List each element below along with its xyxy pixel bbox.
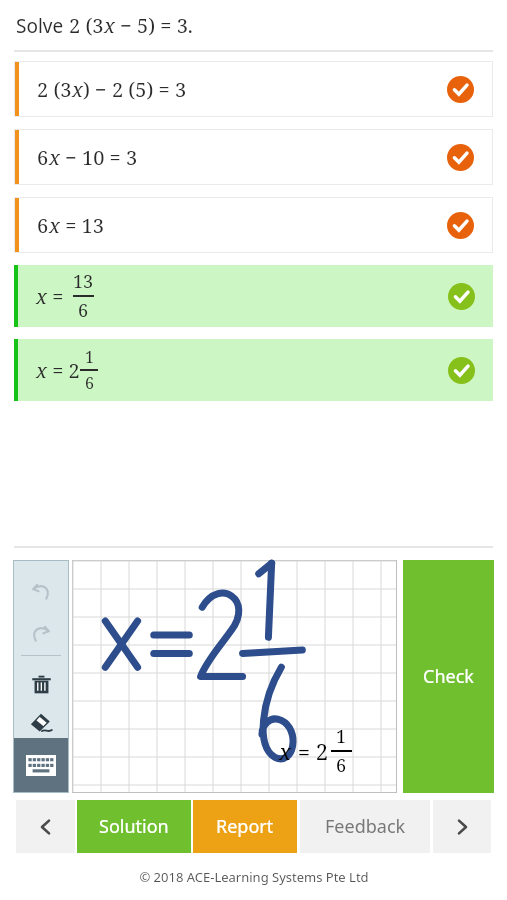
staticText: 6	[336, 753, 347, 778]
staticText: Solve	[16, 13, 69, 39]
button[interactable]: Feedback	[300, 800, 430, 853]
button[interactable]: Next	[433, 800, 491, 853]
staticText: Check	[423, 664, 474, 689]
staticText: x	[49, 144, 60, 171]
staticText: 6	[37, 212, 49, 239]
staticText: 2 (3	[37, 76, 72, 103]
button[interactable]: Undo	[20, 571, 62, 613]
button[interactable]: Clear	[21, 664, 61, 704]
button[interactable]: Check	[403, 560, 494, 793]
button[interactable]: 2 (3	[15, 62, 492, 116]
staticText: x	[279, 736, 292, 766]
staticText: Report	[216, 814, 274, 839]
staticText: − 5) = 3.	[115, 12, 193, 39]
button[interactable]: Keyboard	[14, 738, 68, 792]
staticText: Solution	[99, 814, 169, 839]
staticText: = 2	[292, 736, 329, 766]
staticText: − 10 = 3	[60, 144, 138, 171]
staticText: = 13	[60, 212, 104, 239]
staticText: 6	[85, 372, 94, 394]
staticText: 6	[78, 298, 89, 323]
staticText: x	[49, 212, 60, 239]
staticText: 1	[336, 724, 347, 749]
button[interactable]: Eraser	[21, 704, 61, 738]
button[interactable]: Previous	[16, 800, 75, 853]
button[interactable]: 6	[15, 130, 492, 184]
staticText: ) − 2 (5) = 3	[83, 76, 187, 103]
staticText: x	[72, 76, 83, 103]
staticText: x	[104, 12, 115, 39]
button[interactable]: x	[14, 339, 493, 401]
staticText: 2 (3	[69, 12, 104, 39]
staticText: = 2	[47, 357, 80, 384]
staticText: x	[36, 283, 47, 310]
button[interactable]: x	[14, 265, 493, 327]
button[interactable]: Solution	[77, 800, 191, 853]
staticText: =	[47, 283, 69, 310]
staticText: x	[36, 357, 47, 384]
staticText: Feedback	[325, 814, 406, 839]
staticText: 6	[37, 144, 49, 171]
button[interactable]: Report	[193, 800, 297, 853]
button[interactable]: 6	[15, 198, 492, 252]
button[interactable]: Redo	[20, 613, 62, 655]
staticText: 1	[85, 346, 94, 368]
staticText: 13	[73, 269, 94, 294]
staticText: © 2018 ACE-Learning Systems Pte Ltd	[139, 868, 369, 886]
